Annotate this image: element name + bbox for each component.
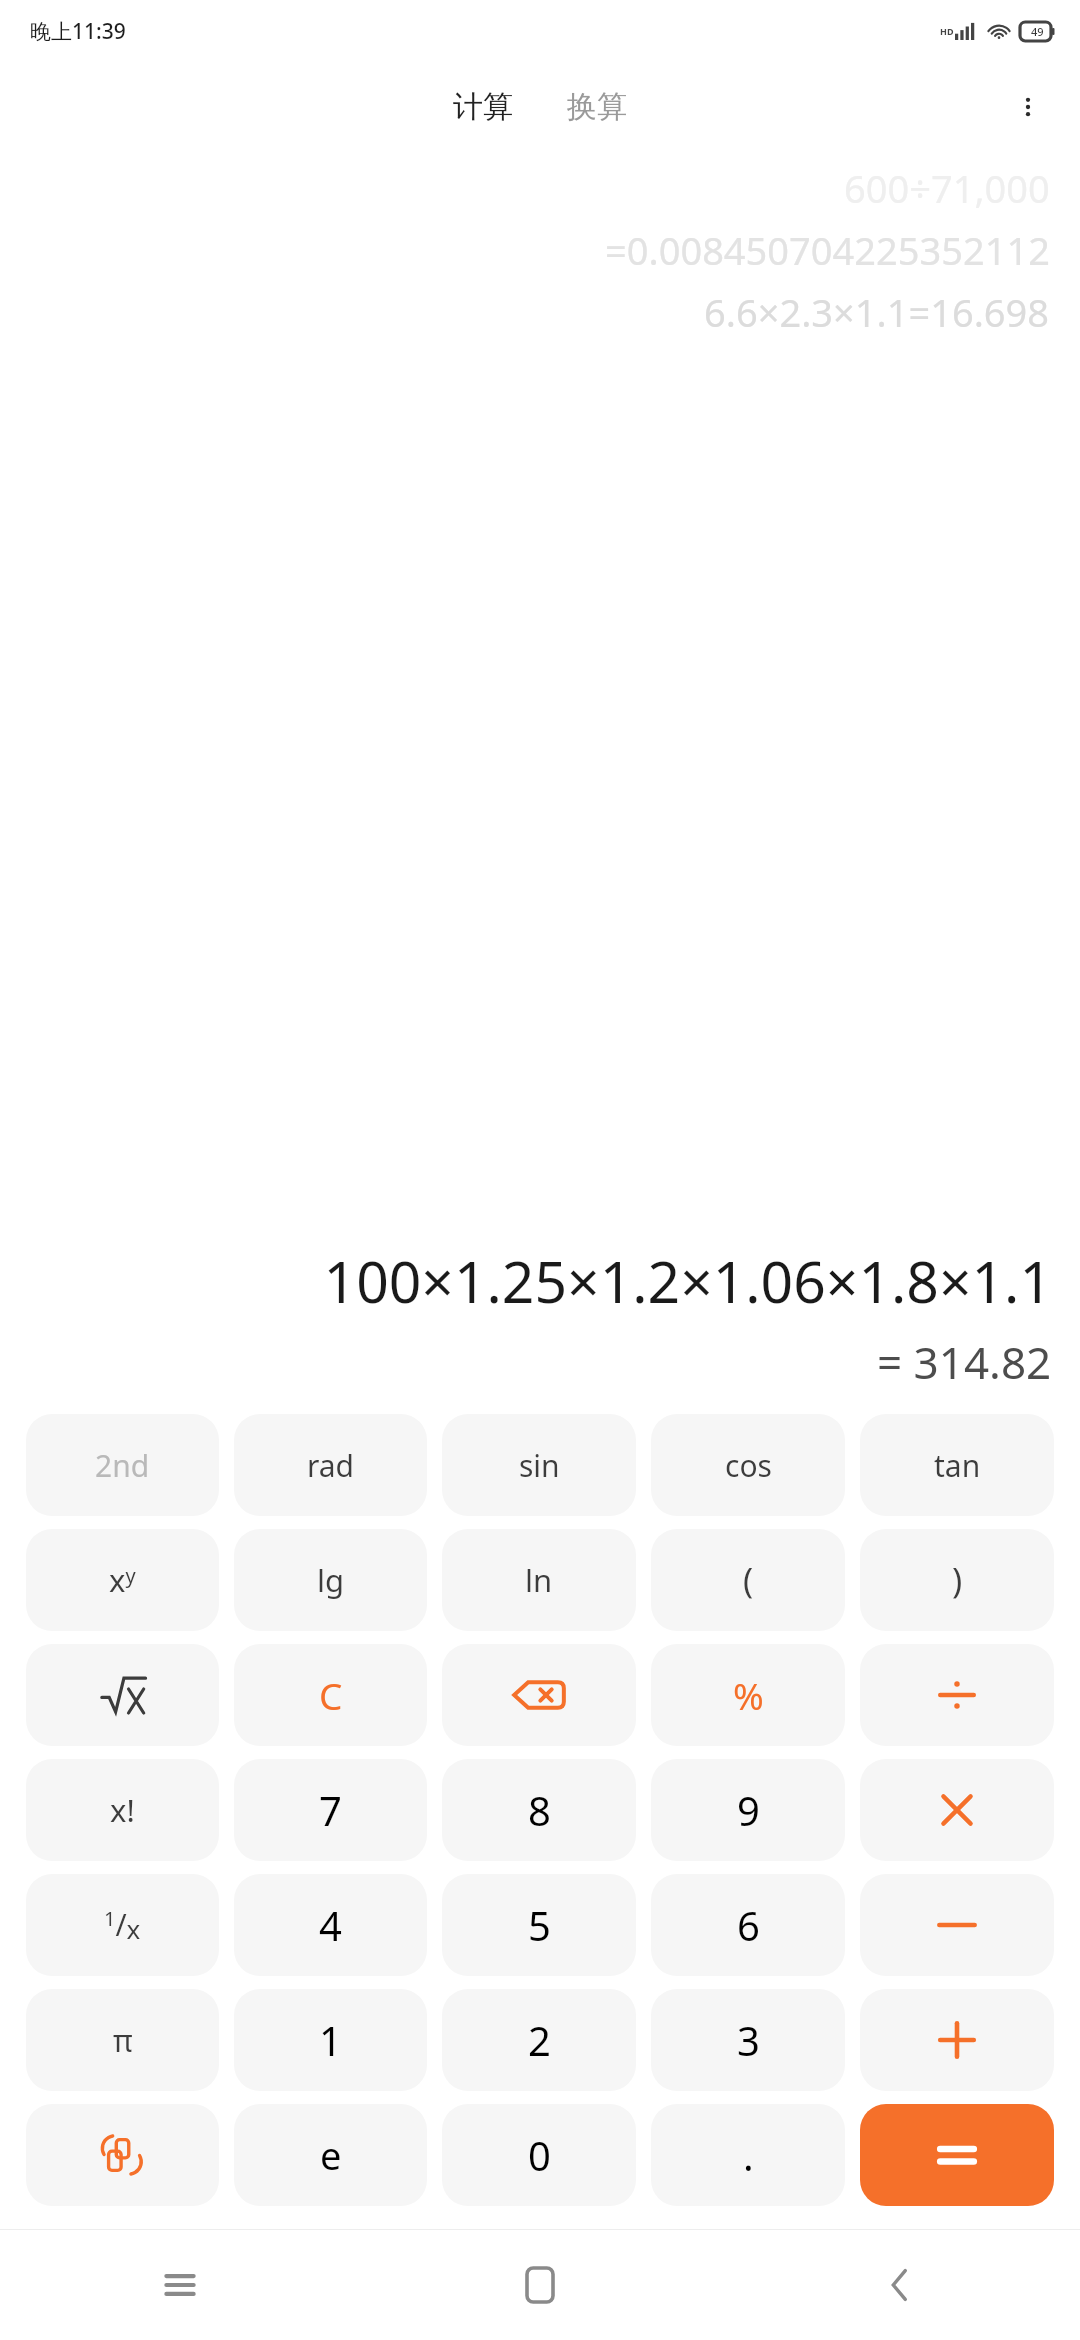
- staticText: C: [319, 1670, 343, 1720]
- staticText: 晚上11:39: [30, 17, 126, 46]
- button[interactable]: (: [651, 1529, 845, 1631]
- staticText: .: [743, 2128, 754, 2182]
- staticText: 7: [319, 1783, 342, 1837]
- button[interactable]: 3: [651, 1989, 845, 2091]
- staticText: 1/x: [104, 1904, 141, 1947]
- staticText: tan: [934, 1445, 981, 1486]
- button[interactable]: C: [234, 1644, 427, 1746]
- button[interactable]: Back: [720, 2230, 1080, 2340]
- button[interactable]: 9: [651, 1759, 845, 1861]
- button[interactable]: e: [234, 2104, 427, 2206]
- staticText: 1: [319, 2013, 342, 2067]
- button[interactable]: Divide: [860, 1644, 1054, 1746]
- button[interactable]: Power: [26, 1529, 219, 1631]
- staticText: 600÷71,000: [844, 162, 1050, 214]
- button[interactable]: tan: [860, 1414, 1054, 1516]
- button[interactable]: rad: [234, 1414, 427, 1516]
- button[interactable]: 1: [234, 1989, 427, 2091]
- button[interactable]: Plus: [860, 1989, 1054, 2091]
- button[interactable]: Square root: [26, 1644, 219, 1746]
- button[interactable]: Equals: [860, 2104, 1054, 2206]
- staticText: 2nd: [95, 1445, 150, 1486]
- staticText: 0: [528, 2128, 551, 2182]
- staticText: 4: [319, 1898, 342, 1952]
- staticText: cos: [725, 1445, 772, 1486]
- button[interactable]: 计算: [439, 80, 527, 134]
- button[interactable]: %: [651, 1644, 845, 1746]
- button[interactable]: lg: [234, 1529, 427, 1631]
- button[interactable]: ln: [442, 1529, 636, 1631]
- button[interactable]: 2: [442, 1989, 636, 2091]
- staticText: 6.6×2.3×1.1=16.698: [704, 286, 1050, 338]
- staticText: %: [733, 1670, 764, 1720]
- button[interactable]: Reciprocal: [26, 1874, 219, 1976]
- staticText: xy: [109, 1559, 136, 1601]
- button[interactable]: π: [26, 1989, 219, 2091]
- button[interactable]: 换算: [553, 80, 641, 134]
- staticText: 100×1.25×1.2×1.06×1.8×1.1: [323, 1242, 1052, 1320]
- button[interactable]: More options: [998, 77, 1058, 137]
- staticText: 49: [1031, 24, 1044, 39]
- staticText: e: [320, 2129, 342, 2181]
- staticText: =0.008450704225352112: [605, 224, 1050, 276]
- staticText: sin: [519, 1445, 560, 1486]
- button[interactable]: 4: [234, 1874, 427, 1976]
- staticText: π: [113, 2020, 133, 2061]
- staticText: 2: [528, 2013, 551, 2067]
- staticText: HD: [940, 25, 954, 37]
- staticText: 3: [737, 2013, 760, 2067]
- staticText: x!: [110, 1789, 135, 1831]
- staticText: 6: [737, 1898, 760, 1952]
- button[interactable]: cos: [651, 1414, 845, 1516]
- staticText: 8: [528, 1783, 551, 1837]
- button[interactable]: Multiply: [860, 1759, 1054, 1861]
- button[interactable]: Backspace: [442, 1644, 636, 1746]
- staticText: 计算: [453, 88, 513, 126]
- button[interactable]: 5: [442, 1874, 636, 1976]
- staticText: ln: [525, 1559, 553, 1601]
- staticText: ): [952, 1557, 963, 1603]
- button[interactable]: 2nd: [26, 1414, 219, 1516]
- button[interactable]: .: [651, 2104, 845, 2206]
- staticText: 5: [528, 1898, 551, 1952]
- button[interactable]: Recents: [0, 2230, 360, 2340]
- button[interactable]: Swap: [26, 2104, 219, 2206]
- staticText: lg: [317, 1559, 345, 1601]
- button[interactable]: x!: [26, 1759, 219, 1861]
- button[interactable]: 6: [651, 1874, 845, 1976]
- button[interactable]: sin: [442, 1414, 636, 1516]
- button[interactable]: ): [860, 1529, 1054, 1631]
- button[interactable]: 7: [234, 1759, 427, 1861]
- button[interactable]: 8: [442, 1759, 636, 1861]
- staticText: 9: [737, 1783, 760, 1837]
- button[interactable]: 0: [442, 2104, 636, 2206]
- button[interactable]: Home: [360, 2230, 720, 2340]
- staticText: = 314.82: [877, 1332, 1052, 1392]
- staticText: (: [743, 1557, 754, 1603]
- staticText: rad: [307, 1445, 355, 1486]
- button[interactable]: Minus: [860, 1874, 1054, 1976]
- staticText: 换算: [567, 88, 627, 126]
